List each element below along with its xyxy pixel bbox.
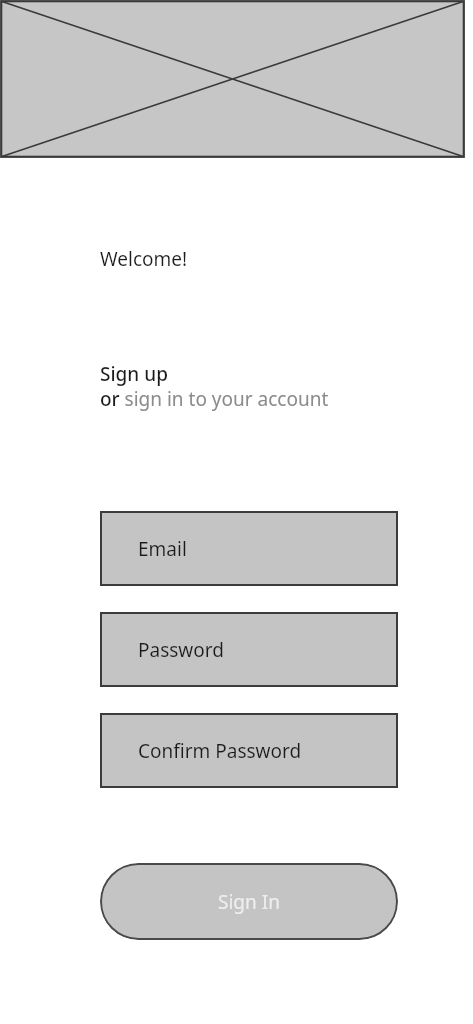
button[interactable]: Password — [100, 612, 398, 687]
staticText: or sign in to your account — [100, 386, 329, 412]
button[interactable]: Email — [100, 511, 398, 586]
button[interactable]: Header image placeholder — [0, 0, 465, 158]
staticText: Sign In — [218, 889, 280, 915]
staticText: Confirm Password — [138, 738, 302, 764]
button[interactable]: Sign In — [100, 863, 398, 940]
button[interactable]: or sign in to your account — [100, 386, 329, 412]
staticText: Welcome! — [100, 246, 188, 272]
button[interactable]: Confirm Password — [100, 713, 398, 788]
staticText: Password — [138, 637, 224, 663]
staticText: Sign up — [100, 361, 168, 387]
staticText: Email — [138, 536, 187, 562]
